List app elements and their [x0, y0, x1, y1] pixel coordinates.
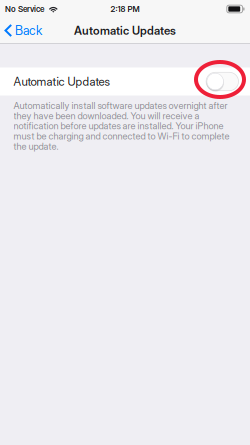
staticText: Back [15, 23, 42, 38]
staticText: 2:18 PM [110, 4, 139, 14]
button[interactable]: Automatic Updates [0, 67, 250, 95]
staticText: Automatically install software updates o… [13, 100, 229, 151]
staticText: No Service [5, 4, 44, 14]
staticText: Automatic Updates [74, 24, 176, 37]
staticText: Automatic Updates [13, 74, 110, 88]
button[interactable]: Back [0, 18, 48, 43]
